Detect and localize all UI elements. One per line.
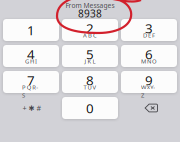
staticText: 5	[86, 45, 94, 63]
button[interactable]: 7	[3, 71, 59, 93]
staticText: PQRS	[22, 83, 40, 91]
button[interactable]: 8	[62, 71, 118, 93]
button[interactable]: Delete	[121, 97, 177, 119]
button[interactable]: 5	[62, 45, 118, 67]
staticText: 8938	[78, 7, 102, 20]
button[interactable]: 3	[121, 19, 177, 41]
staticText: 9	[145, 71, 153, 89]
staticText: 3	[145, 19, 153, 37]
staticText: JKL	[84, 57, 96, 65]
button[interactable]: Symbols	[3, 97, 59, 119]
staticText: 0	[86, 99, 94, 117]
staticText: 6	[145, 45, 153, 63]
staticText: 8	[86, 71, 94, 89]
staticText: 1	[27, 21, 35, 39]
staticText: TUV	[83, 83, 97, 91]
button[interactable]: 4	[3, 45, 59, 67]
staticText: From Messages	[65, 1, 114, 10]
button[interactable]: 9	[121, 71, 177, 93]
staticText: 7	[27, 71, 35, 89]
staticText: ABC	[83, 31, 97, 39]
button[interactable]: 2	[62, 19, 118, 41]
staticText: WXYZ	[141, 83, 157, 91]
staticText: GHI	[25, 57, 37, 65]
button[interactable]: 6	[121, 45, 177, 67]
staticText: DEF	[143, 31, 155, 39]
staticText: 2	[86, 19, 94, 37]
staticText: 4	[27, 45, 35, 63]
staticText: + ✱ #	[22, 103, 41, 113]
staticText: MNO	[141, 57, 157, 65]
button[interactable]: 1	[3, 19, 59, 41]
button[interactable]: 0	[62, 97, 118, 119]
